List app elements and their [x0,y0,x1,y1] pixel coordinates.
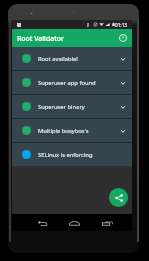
staticText: Root available! [38,55,78,63]
button[interactable]: Root available! [12,47,132,70]
staticText: SELinux is enforcing [38,151,93,159]
button[interactable]: Home [66,215,82,231]
button[interactable]: Info [116,31,130,45]
button[interactable]: SELinux is enforcing [12,143,132,166]
staticText: Superuser binary [38,103,85,111]
button[interactable]: Back [34,215,50,231]
staticText: Superuser app found [38,79,96,87]
button[interactable]: Share [109,188,128,207]
button[interactable]: Superuser app found [12,71,132,94]
button[interactable]: Recents [99,215,115,231]
staticText: 01:13 [115,22,128,28]
staticText: Multiple busybox's [38,127,89,135]
button[interactable]: Superuser binary [12,95,132,118]
button[interactable]: Multiple busybox's [12,119,132,142]
staticText: Root Validator [17,34,64,43]
